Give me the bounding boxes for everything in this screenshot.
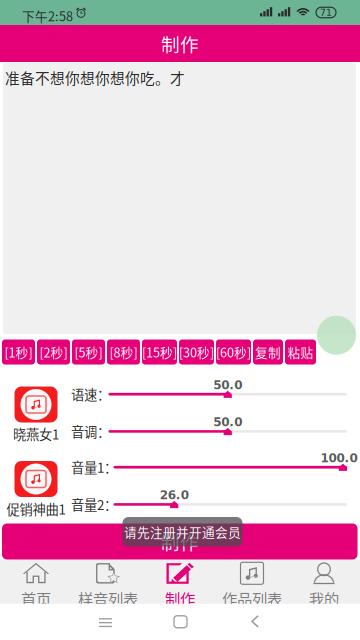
staticText: 26.0 [160, 488, 189, 502]
staticText: [60秒] [216, 343, 251, 361]
staticText: [2秒] [39, 343, 67, 361]
button[interactable]: 作品列表 [216, 560, 288, 604]
button[interactable]: Back [235, 608, 275, 635]
staticText: 100.0 [320, 451, 357, 465]
staticText: [1秒] [4, 343, 32, 361]
button[interactable]: 制作 [2, 523, 357, 559]
button[interactable]: [15秒] [142, 339, 177, 364]
staticText: 作品列表 [222, 587, 282, 609]
staticText: 50.0 [213, 415, 242, 429]
button[interactable]: [5秒] [72, 339, 105, 364]
staticText: 晓燕女1 [13, 424, 59, 443]
staticText: 粘贴 [287, 343, 313, 361]
staticText: 首页 [21, 587, 51, 609]
staticText: 下午2:58 [22, 6, 73, 25]
button[interactable]: 我的 [288, 560, 360, 604]
staticText: 50.0 [213, 378, 242, 392]
staticText: 71 [320, 7, 332, 18]
staticText: [15秒] [142, 343, 177, 361]
button[interactable]: Recents [85, 608, 126, 636]
button[interactable]: 制作 [144, 560, 216, 604]
button[interactable]: [8秒] [107, 339, 140, 364]
staticText: [30秒] [179, 343, 214, 361]
button[interactable]: 首页 [0, 560, 72, 604]
button[interactable]: [30秒] [179, 339, 214, 364]
staticText: 音量1： [71, 457, 117, 477]
staticText: [8秒] [109, 343, 137, 361]
button[interactable]: 晓燕女1 [14, 386, 57, 422]
button[interactable]: [60秒] [216, 339, 251, 364]
staticText: 请先注册并开通会员 [124, 523, 241, 541]
staticText: 语速： [71, 384, 110, 404]
staticText: [5秒] [74, 343, 102, 361]
button[interactable]: 促销神曲1 [14, 461, 57, 497]
staticText: 复制 [255, 343, 281, 361]
button[interactable]: 复制 [253, 339, 283, 364]
staticText: 促销神曲1 [6, 499, 65, 518]
button[interactable]: Home [160, 608, 201, 636]
staticText: 样音列表 [78, 587, 138, 609]
staticText: 制作 [161, 528, 199, 555]
button[interactable]: 样音列表 [72, 560, 144, 604]
staticText: 我的 [309, 587, 339, 609]
button[interactable]: 粘贴 [285, 339, 316, 364]
staticText: 制作 [165, 587, 195, 609]
staticText: 音调： [71, 421, 110, 441]
button[interactable]: [1秒] [2, 339, 35, 364]
button[interactable]: [2秒] [37, 339, 70, 364]
staticText: 制作 [161, 30, 199, 57]
staticText: 准备不想你想你想你吃。才 [5, 67, 185, 88]
staticText: 音量2： [71, 494, 117, 514]
